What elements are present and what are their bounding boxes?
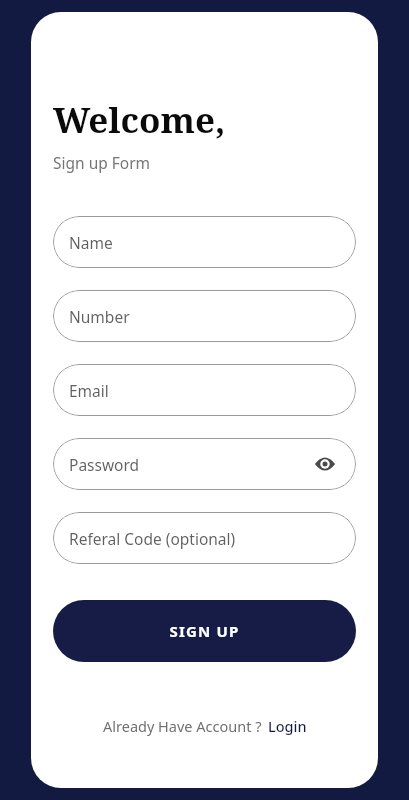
button[interactable]: Login (268, 716, 307, 736)
button[interactable]: Password (53, 438, 356, 490)
staticText: Welcome, (53, 96, 226, 144)
button[interactable]: SIGN UP (53, 600, 356, 662)
staticText: Referal Code (optional) (69, 528, 236, 549)
button[interactable]: Show password (310, 449, 340, 479)
staticText: Number (69, 306, 130, 327)
staticText: Email (69, 380, 109, 401)
button[interactable]: Referal Code (optional) (53, 512, 356, 564)
staticText: Name (69, 232, 113, 253)
button[interactable]: Number (53, 290, 356, 342)
button[interactable]: Email (53, 364, 356, 416)
staticText: Login (268, 716, 307, 736)
staticText: SIGN UP (169, 621, 240, 641)
staticText: Already Have Account ? (103, 716, 262, 736)
staticText: Password (69, 454, 140, 475)
staticText: Sign up Form (53, 152, 151, 173)
button[interactable]: Name (53, 216, 356, 268)
